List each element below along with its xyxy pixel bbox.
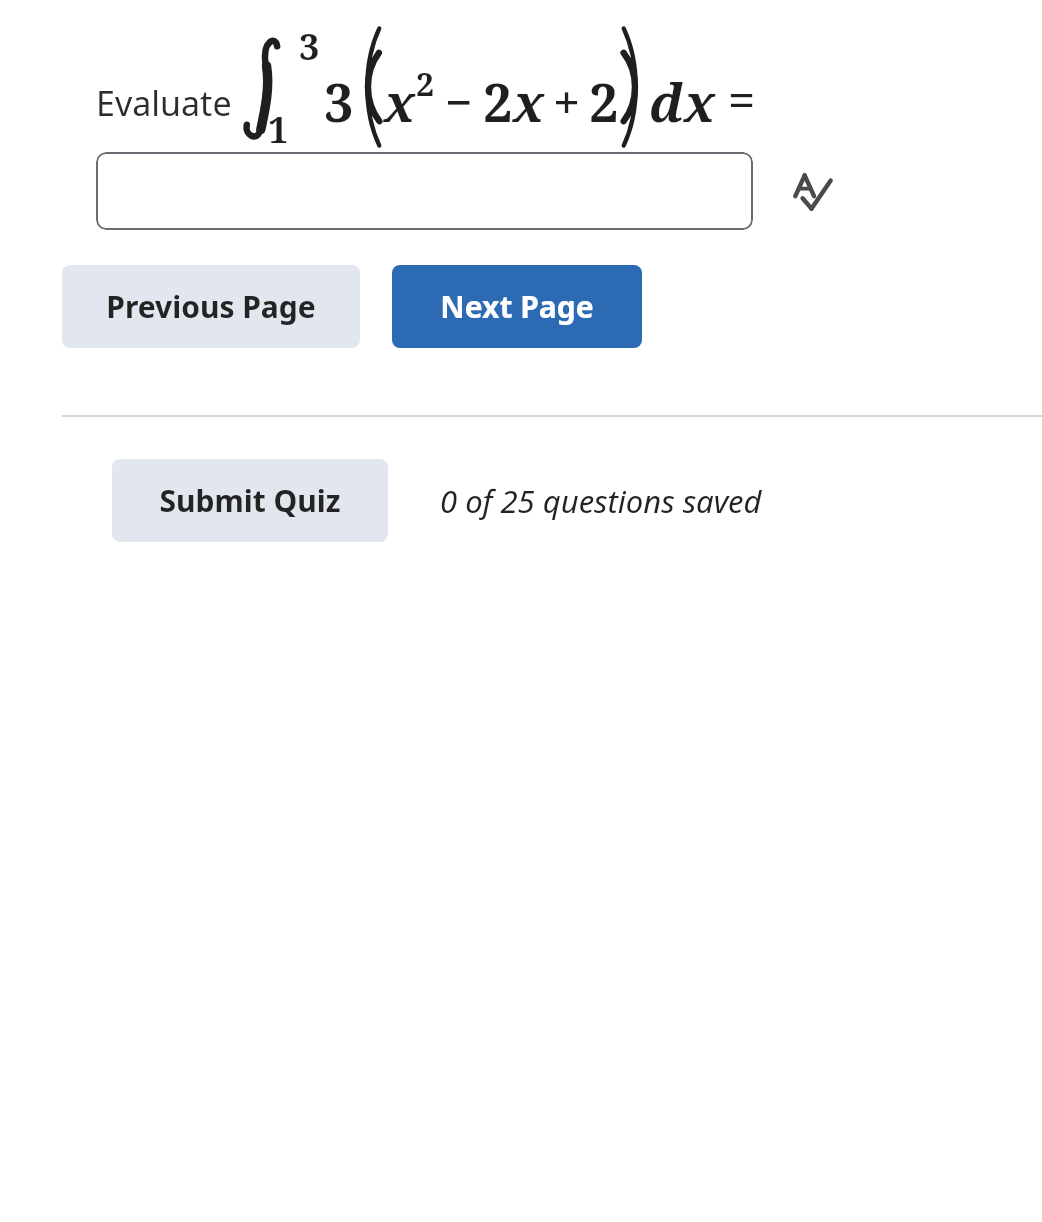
staticText: Submit Quiz	[159, 480, 341, 521]
staticText: d	[649, 66, 684, 137]
staticText: =	[728, 66, 756, 131]
staticText: 1	[268, 105, 289, 154]
staticText: 3	[324, 66, 354, 137]
button[interactable]	[96, 152, 753, 230]
staticText: Next Page	[440, 286, 594, 327]
staticText: 0 of 25 questions saved	[440, 480, 762, 522]
staticText: 2	[483, 66, 513, 137]
button[interactable]: Previous Page	[62, 265, 360, 348]
staticText: x	[684, 66, 716, 137]
staticText: 2	[589, 66, 619, 137]
staticText: −	[445, 69, 473, 134]
button[interactable]: Submit Quiz	[112, 459, 388, 542]
staticText: x	[513, 66, 545, 137]
staticText: Previous Page	[106, 286, 316, 327]
button[interactable]: Next Page	[392, 265, 642, 348]
staticText: x	[384, 66, 416, 137]
staticText: 3	[299, 22, 320, 71]
button[interactable]: Spell check	[787, 165, 839, 217]
staticText: Evaluate	[96, 80, 232, 126]
staticText: 2	[416, 62, 435, 106]
staticText: +	[553, 69, 581, 134]
